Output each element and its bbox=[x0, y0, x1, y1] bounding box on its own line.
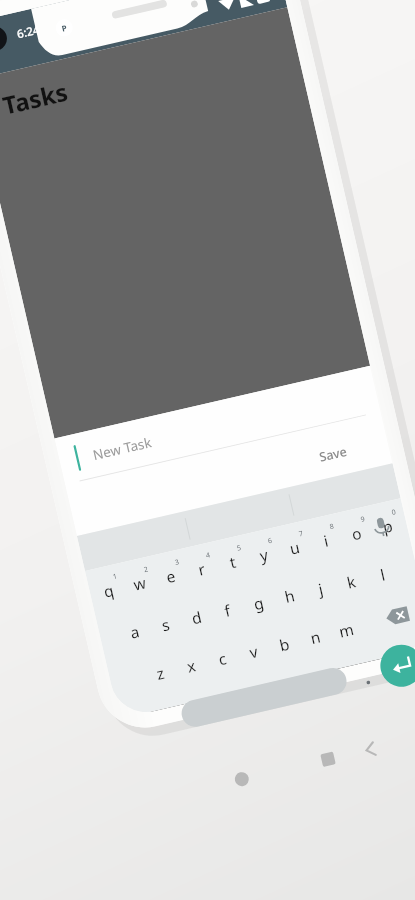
button[interactable]: Tasks app on a phone with keyboard open bbox=[0, 0, 415, 900]
